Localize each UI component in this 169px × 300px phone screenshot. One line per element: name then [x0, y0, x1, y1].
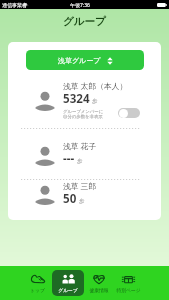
button[interactable]: トップ — [22, 270, 52, 296]
staticText: 浅草 太郎（本人） — [63, 81, 128, 92]
staticText: 通信事業者 — [2, 2, 27, 8]
staticText: 健康情報 — [89, 287, 109, 293]
staticText: 50 — [63, 191, 77, 207]
button[interactable]: 浅草 三郎 — [8, 179, 161, 220]
staticText: 歩 — [92, 98, 98, 105]
staticText: 浅草 花子 — [63, 141, 97, 152]
button[interactable]: 浅草グループ — [26, 50, 144, 70]
staticText: 午後7:36 — [70, 2, 90, 9]
staticText: 浅草グループ — [58, 56, 101, 65]
staticText: 5324 — [63, 91, 90, 107]
staticText: 歩 — [79, 198, 85, 205]
button[interactable]: 健康情報 — [84, 270, 113, 296]
staticText: --- — [63, 151, 75, 167]
button[interactable]: グループ — [52, 270, 84, 296]
button[interactable]: 歩数の表示切り替え — [118, 108, 140, 118]
button[interactable]: 浅草 花子 — [8, 129, 161, 178]
staticText: 浅草 三郎 — [63, 181, 97, 192]
staticText: グループメンバーに 自分の歩数を非表示 — [63, 109, 104, 119]
staticText: グループ — [63, 15, 106, 28]
staticText: トップ — [30, 287, 45, 293]
staticText: 歩 — [77, 158, 83, 165]
staticText: グループ — [58, 287, 78, 293]
button[interactable]: 特別ページ — [113, 270, 143, 296]
staticText: 特別ページ — [116, 287, 141, 293]
button[interactable]: 浅草 太郎（本人） — [8, 75, 161, 128]
